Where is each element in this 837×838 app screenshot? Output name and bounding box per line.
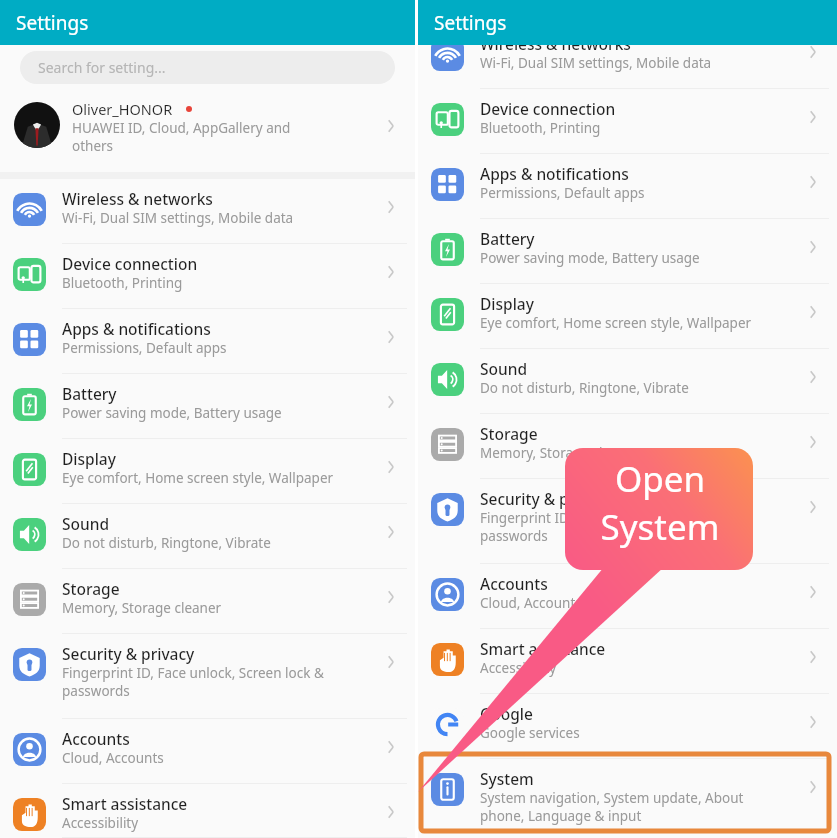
- button[interactable]: Display: [0, 439, 415, 504]
- button[interactable]: Sound: [418, 349, 837, 414]
- button[interactable]: Storage: [418, 414, 837, 479]
- staticText: Display: [480, 293, 534, 314]
- staticText: Apps & notifications: [62, 318, 211, 339]
- staticText: Bluetooth, Printing: [62, 274, 183, 292]
- staticText: Accessibility: [62, 814, 139, 832]
- button[interactable]: Smart assistance: [418, 629, 837, 694]
- button[interactable]: Profile photo: [0, 90, 415, 172]
- staticText: Wi-Fi, Dual SIM settings, Mobile data: [62, 209, 294, 227]
- button[interactable]: System: [418, 759, 837, 838]
- staticText: Wi-Fi, Dual SIM settings, Mobile data: [480, 54, 712, 72]
- staticText: Wireless & networks: [62, 188, 213, 209]
- staticText: Eye comfort, Home screen style, Wallpape…: [480, 314, 752, 332]
- staticText: Display: [62, 448, 116, 469]
- staticText: Settings: [16, 10, 89, 36]
- staticText: Sound: [480, 358, 528, 379]
- staticText: Bluetooth, Printing: [480, 119, 601, 137]
- button[interactable]: Battery: [418, 219, 837, 284]
- staticText: Device connection: [62, 253, 198, 274]
- button[interactable]: Apps & notifications: [0, 309, 415, 374]
- other: Profile photo: [14, 102, 60, 148]
- staticText: System: [480, 768, 534, 789]
- staticText: Google services: [480, 724, 580, 742]
- button[interactable]: Sound: [0, 504, 415, 569]
- staticText: Accessibility: [480, 659, 557, 677]
- staticText: Permissions, Default apps: [62, 339, 227, 357]
- button[interactable]: Smart assistance: [0, 784, 415, 838]
- button[interactable]: Search for setting...: [20, 51, 395, 84]
- button[interactable]: Google: [418, 694, 837, 759]
- button[interactable]: Wireless & networks: [418, 24, 837, 89]
- staticText: Storage: [62, 578, 120, 599]
- button[interactable]: Security & privacy: [0, 634, 415, 719]
- staticText: System navigation, System update, About …: [480, 789, 744, 825]
- staticText: Sound: [62, 513, 110, 534]
- staticText: HUAWEI ID, Cloud, AppGallery and: [72, 119, 291, 137]
- button[interactable]: Device connection: [418, 89, 837, 154]
- button[interactable]: System highlighted: [421, 754, 829, 831]
- staticText: Oliver_HONOR: [72, 99, 173, 119]
- staticText: Eye comfort, Home screen style, Wallpape…: [62, 469, 334, 487]
- staticText: Device connection: [480, 98, 616, 119]
- staticText: Battery: [62, 383, 117, 404]
- staticText: Cloud, Accounts: [480, 594, 582, 612]
- button[interactable]: Security & privacy: [418, 479, 837, 564]
- staticText: Wireless & networks: [480, 33, 631, 54]
- button[interactable]: Display: [418, 284, 837, 349]
- staticText: others: [72, 137, 114, 155]
- button[interactable]: Storage: [0, 569, 415, 634]
- button[interactable]: Device connection: [0, 244, 415, 309]
- staticText: Fingerprint ID, Face unlock, Screen lock…: [480, 509, 742, 545]
- staticText: Smart assistance: [62, 793, 188, 814]
- staticText: Storage: [480, 423, 538, 444]
- staticText: Search for setting...: [38, 58, 166, 77]
- staticText: Memory, Storage cleaner: [62, 599, 222, 617]
- staticText: Open: [567, 455, 753, 503]
- staticText: Do not disturb, Ringtone, Vibrate: [62, 534, 271, 552]
- staticText: Google: [480, 703, 533, 724]
- staticText: Fingerprint ID, Face unlock, Screen lock…: [62, 664, 324, 700]
- staticText: Accounts: [480, 573, 548, 594]
- staticText: Accounts: [62, 728, 130, 749]
- staticText: Security & privacy: [480, 488, 613, 509]
- staticText: Battery: [480, 228, 535, 249]
- button[interactable]: Wireless & networks: [0, 179, 415, 244]
- staticText: Memory, Storage cleaner: [480, 444, 640, 462]
- button[interactable]: Battery: [0, 374, 415, 439]
- button[interactable]: Accounts: [0, 719, 415, 784]
- button[interactable]: Accounts: [418, 564, 837, 629]
- staticText: System: [567, 503, 753, 551]
- staticText: Power saving mode, Battery usage: [62, 404, 282, 422]
- staticText: Permissions, Default apps: [480, 184, 645, 202]
- staticText: Settings: [434, 10, 507, 36]
- staticText: Smart assistance: [480, 638, 606, 659]
- staticText: Do not disturb, Ringtone, Vibrate: [480, 379, 689, 397]
- staticText: Cloud, Accounts: [62, 749, 164, 767]
- staticText: Power saving mode, Battery usage: [480, 249, 700, 267]
- staticText: Security & privacy: [62, 643, 195, 664]
- staticText: Apps & notifications: [480, 163, 629, 184]
- button[interactable]: Apps & notifications: [418, 154, 837, 219]
